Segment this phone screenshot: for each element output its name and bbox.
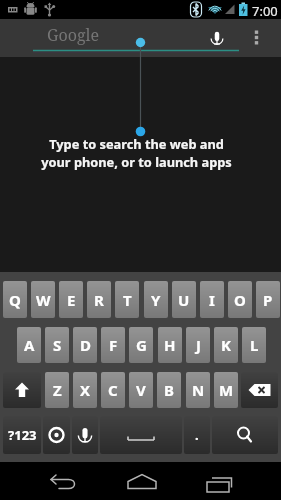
button[interactable]: Voice search: [198, 19, 236, 57]
staticText: X: [80, 380, 91, 400]
button[interactable]: C: [101, 372, 125, 408]
staticText: N: [192, 380, 205, 400]
button[interactable]: P: [256, 281, 280, 318]
button[interactable]: Recents: [188, 462, 250, 500]
button[interactable]: Input method: [43, 416, 70, 454]
button[interactable]: S: [45, 327, 69, 363]
staticText: W: [36, 290, 51, 310]
button[interactable]: ?123: [3, 416, 41, 454]
staticText: Y: [151, 290, 161, 310]
button[interactable]: X: [73, 372, 97, 408]
staticText: P: [263, 290, 273, 310]
button[interactable]: B: [157, 372, 181, 408]
button[interactable]: D: [73, 327, 97, 363]
button[interactable]: Y: [144, 281, 168, 318]
button[interactable]: .: [184, 416, 210, 454]
staticText: R: [94, 290, 104, 310]
button[interactable]: W: [31, 281, 55, 318]
button[interactable]: O: [228, 281, 252, 318]
staticText: Google: [47, 24, 100, 46]
staticText: K: [221, 335, 231, 355]
staticText: F: [109, 335, 118, 355]
button[interactable]: A: [17, 327, 41, 363]
staticText: H: [164, 335, 176, 355]
button[interactable]: Backspace: [241, 372, 278, 408]
staticText: T: [123, 290, 132, 310]
button[interactable]: U: [172, 281, 196, 318]
staticText: I: [209, 290, 215, 310]
button[interactable]: Voice input: [72, 416, 98, 454]
button[interactable]: More options: [241, 19, 273, 57]
staticText: Type to search the web and your phone, o…: [41, 135, 232, 171]
button[interactable]: Q: [3, 281, 27, 318]
button[interactable]: V: [129, 372, 153, 408]
staticText: B: [164, 380, 174, 400]
staticText: S: [53, 335, 62, 355]
staticText: M: [219, 380, 234, 400]
button[interactable]: L: [242, 327, 266, 363]
staticText: .: [195, 426, 199, 444]
button[interactable]: E: [59, 281, 83, 318]
button[interactable]: Shift: [3, 372, 41, 408]
button[interactable]: J: [186, 327, 210, 363]
button[interactable]: I: [200, 281, 224, 318]
button[interactable]: G: [129, 327, 153, 363]
staticText: U: [178, 290, 190, 310]
staticText: Q: [9, 290, 21, 310]
button[interactable]: F: [101, 327, 125, 363]
button[interactable]: Space: [100, 416, 182, 454]
button[interactable]: Home: [111, 462, 173, 500]
staticText: ?123: [8, 426, 37, 444]
staticText: L: [250, 335, 259, 355]
staticText: A: [24, 335, 35, 355]
staticText: G: [136, 335, 147, 355]
staticText: C: [108, 380, 118, 400]
staticText: Z: [53, 380, 62, 400]
button[interactable]: M: [214, 372, 238, 408]
staticText: 7:00: [252, 2, 278, 19]
staticText: E: [67, 290, 76, 310]
staticText: O: [234, 290, 246, 310]
button[interactable]: Back: [34, 462, 96, 500]
button[interactable]: Z: [45, 372, 69, 408]
staticText: J: [196, 335, 201, 355]
button[interactable]: R: [87, 281, 111, 318]
button[interactable]: K: [214, 327, 238, 363]
staticText: D: [80, 335, 91, 355]
staticText: V: [136, 380, 146, 400]
button[interactable]: H: [158, 327, 182, 363]
button[interactable]: Search: [212, 416, 278, 454]
button[interactable]: T: [115, 281, 139, 318]
button[interactable]: N: [186, 372, 210, 408]
